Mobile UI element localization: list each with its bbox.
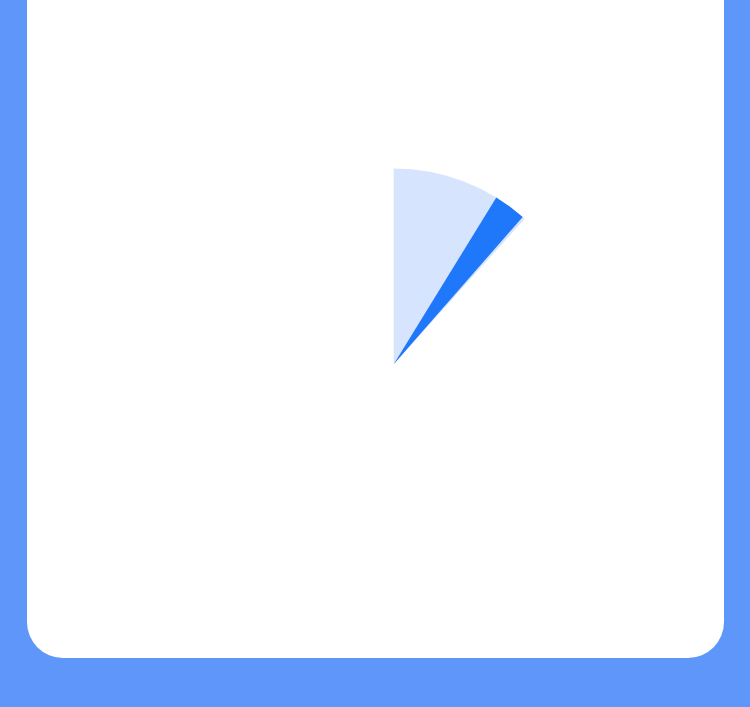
button[interactable]: Statistics pie chart <box>198 168 590 560</box>
